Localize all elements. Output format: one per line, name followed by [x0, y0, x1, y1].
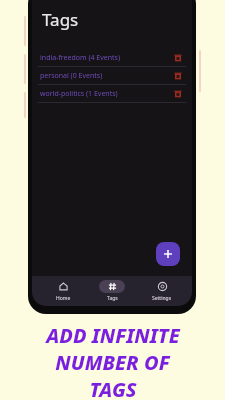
- button[interactable]: Settings: [146, 278, 178, 304]
- button[interactable]: Tags: [93, 278, 131, 304]
- staticText: personal (0 Events): [40, 71, 172, 81]
- staticText: Settings: [152, 295, 172, 302]
- staticText: Tags: [42, 8, 79, 31]
- button[interactable]: Add tag: [156, 242, 180, 266]
- staticText: ADD INFINITE: [46, 322, 180, 349]
- staticText: world-politics (1 Events): [40, 89, 172, 99]
- staticText: Tags: [107, 295, 118, 302]
- staticText: india-freedom (4 Events): [40, 53, 172, 63]
- button[interactable]: Delete tag: [172, 88, 184, 100]
- staticText: TAGS: [89, 376, 137, 400]
- button[interactable]: Delete tag: [172, 70, 184, 82]
- button[interactable]: india-freedom (4 Events): [32, 49, 192, 66]
- staticText: Home: [56, 295, 71, 302]
- staticText: NUMBER OF: [55, 349, 170, 376]
- button[interactable]: Home: [47, 278, 79, 304]
- button[interactable]: personal (0 Events): [32, 67, 192, 84]
- button[interactable]: world-politics (1 Events): [32, 85, 192, 102]
- button[interactable]: Delete tag: [172, 52, 184, 64]
